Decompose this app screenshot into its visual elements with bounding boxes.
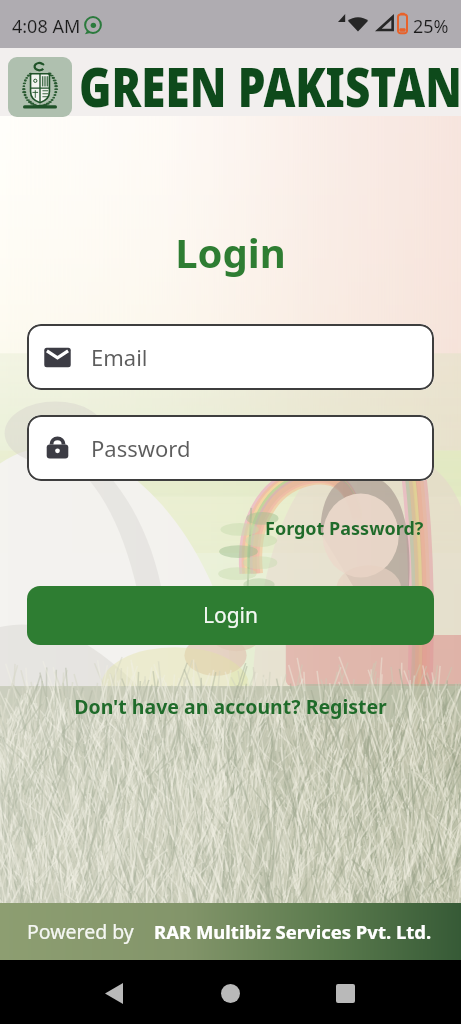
button[interactable]: Forgot Password? xyxy=(265,516,424,541)
button[interactable]: Login xyxy=(27,586,434,645)
button[interactable]: Home xyxy=(206,969,254,1017)
staticText: Login xyxy=(0,225,461,279)
button[interactable]: Don't have an account? Register xyxy=(0,693,461,720)
button[interactable]: Password xyxy=(27,415,434,481)
staticText: Powered by xyxy=(27,918,134,945)
staticText: RAR Multibiz Services Pvt. Ltd. xyxy=(154,919,432,944)
staticText: Password xyxy=(91,433,191,463)
button[interactable]: Back xyxy=(90,969,138,1017)
staticText: Email xyxy=(91,342,148,372)
staticText: 4:08 AM xyxy=(12,14,81,39)
button[interactable]: Recents xyxy=(321,969,369,1017)
staticText: Login xyxy=(203,601,259,630)
staticText: 25% xyxy=(413,14,449,39)
button[interactable]: Email xyxy=(27,324,434,390)
staticText: GREEN PAKISTAN xyxy=(79,48,461,116)
